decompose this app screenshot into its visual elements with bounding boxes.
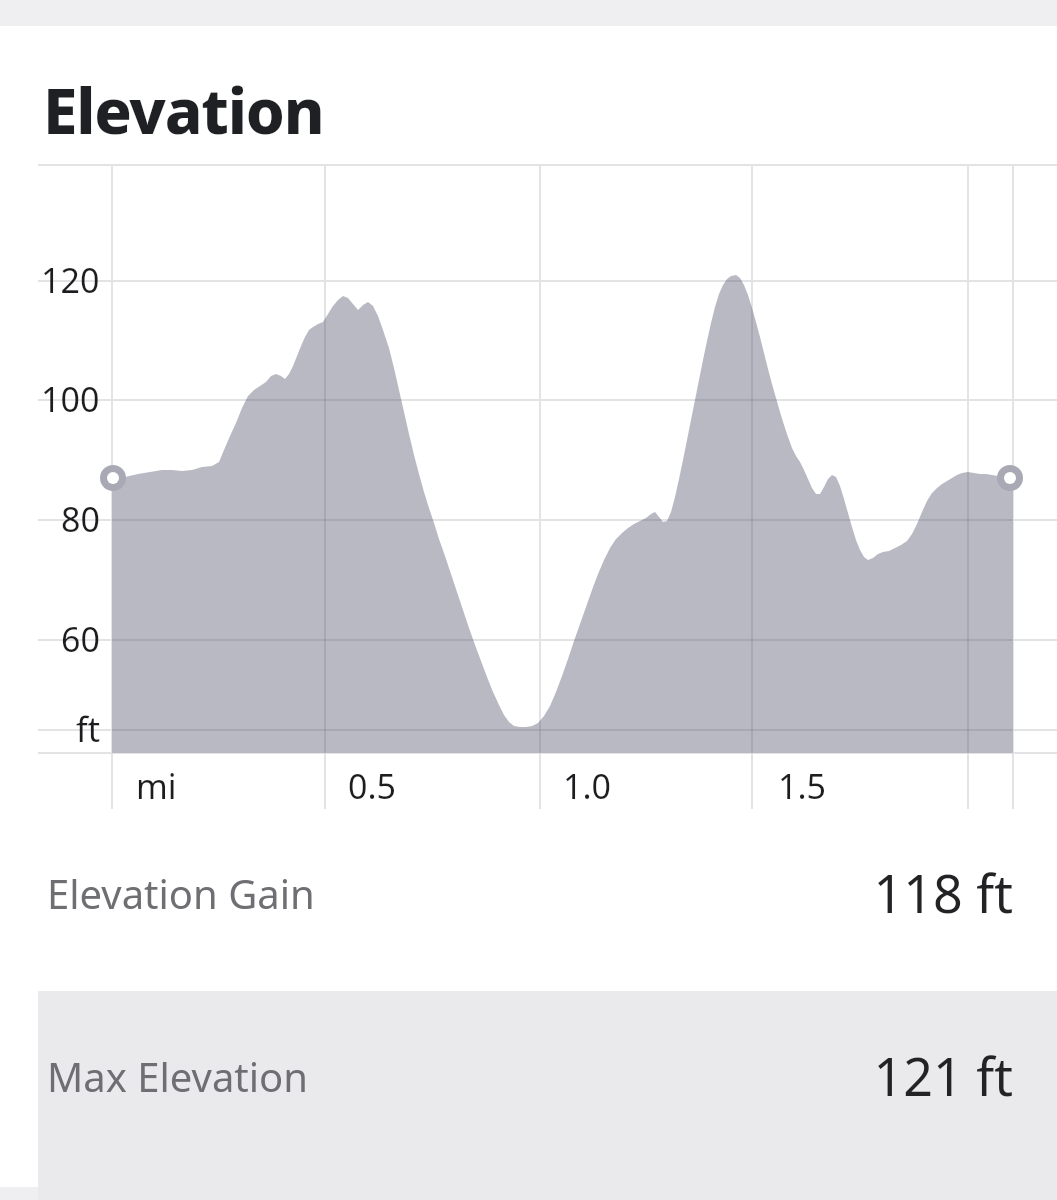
staticText: Elevation Gain [47,866,315,920]
button[interactable]: Elevation Gain [0,857,1057,953]
staticText: 120 [41,257,100,303]
staticText: 0.5 [348,763,397,809]
staticText: 60 [61,616,100,662]
staticText: 80 [61,496,100,542]
staticText: 1.0 [563,763,612,809]
staticText: 118 ft [873,857,1013,928]
staticText: 100 [41,376,100,422]
button[interactable]: Max Elevation [0,1040,1057,1136]
staticText: mi [136,763,177,809]
staticText: Elevation [43,68,324,152]
staticText: 121 ft [873,1040,1013,1111]
staticText: 1.5 [778,763,827,809]
staticText: ft [76,706,100,752]
staticText: Max Elevation [47,1049,309,1103]
